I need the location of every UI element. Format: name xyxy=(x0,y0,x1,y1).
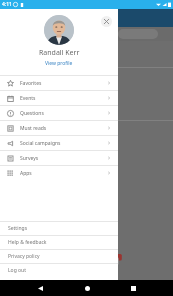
button[interactable]: Events xyxy=(0,91,118,105)
staticText: Must reads xyxy=(20,125,47,132)
button[interactable]: Close xyxy=(101,16,112,27)
button[interactable]: Surveys xyxy=(0,151,118,165)
button[interactable]: Social campaigns xyxy=(0,136,118,150)
staticText: Log out xyxy=(8,267,26,274)
staticText: Apps xyxy=(20,170,32,177)
button[interactable]: Apps xyxy=(0,166,118,180)
staticText: Social campaigns xyxy=(20,140,61,147)
button[interactable]: View profile xyxy=(45,60,73,67)
button[interactable]: Must reads xyxy=(0,121,118,135)
button[interactable]: Recents xyxy=(126,281,140,295)
button[interactable]: Questions xyxy=(0,106,118,120)
staticText: View profile xyxy=(45,60,73,67)
staticText: Events xyxy=(20,95,36,102)
staticText: Questions xyxy=(20,110,44,117)
staticText: Randall Kerr xyxy=(39,48,80,58)
button[interactable]: Help & feedback xyxy=(0,236,118,249)
staticText: Settings xyxy=(8,225,28,232)
staticText: Privacy policy xyxy=(8,253,40,260)
staticText: Favorites xyxy=(20,80,42,87)
button[interactable]: Settings xyxy=(0,222,118,235)
staticText: Surveys xyxy=(20,155,39,162)
button[interactable]: Privacy policy xyxy=(0,250,118,263)
button[interactable]: Favorites xyxy=(0,76,118,90)
staticText: Help & feedback xyxy=(8,239,47,246)
staticText: 4:11 xyxy=(2,1,12,8)
button[interactable]: Back xyxy=(33,281,47,295)
button[interactable]: Home xyxy=(80,281,94,295)
button[interactable]: Log out xyxy=(0,264,118,277)
